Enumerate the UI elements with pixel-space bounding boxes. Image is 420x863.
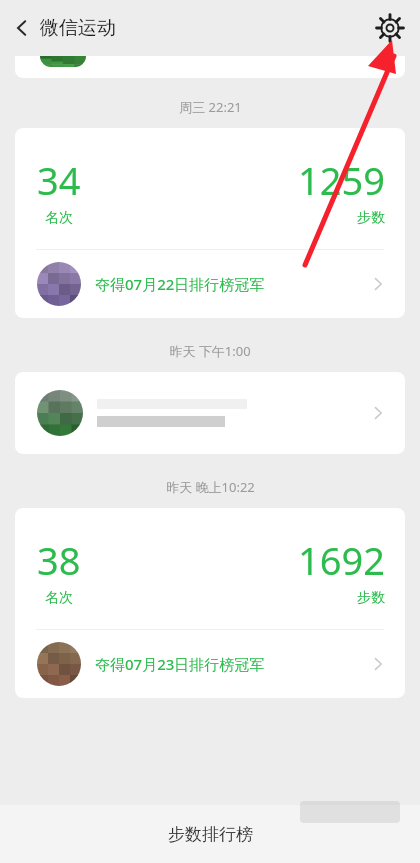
button[interactable]: 步数排行榜 [0, 805, 420, 863]
button[interactable] [15, 56, 405, 78]
staticText: 夺得07月23日排行榜冠军 [95, 654, 265, 674]
staticText: 步数排行榜 [168, 824, 253, 845]
staticText: 步数 [357, 209, 385, 227]
staticText: 夺得07月22日排行榜冠军 [95, 274, 265, 294]
staticText: 1259 [298, 154, 385, 206]
staticText: 1692 [298, 534, 385, 586]
staticText: 昨天 下午1:00 [169, 342, 251, 360]
button[interactable] [15, 372, 405, 454]
staticText: 微信运动 [40, 16, 116, 40]
staticText: 名次 [45, 589, 73, 607]
button[interactable]: 38 [15, 508, 405, 698]
staticText: 周三 22:21 [179, 98, 242, 116]
button[interactable]: 34 [15, 128, 405, 318]
staticText: 34 [37, 154, 81, 206]
staticText: 步数 [357, 589, 385, 607]
staticText: 名次 [45, 209, 73, 227]
button[interactable]: Back [0, 6, 44, 50]
button[interactable]: Settings [368, 6, 412, 50]
staticText: 昨天 晚上10:22 [166, 478, 255, 496]
staticText: 38 [37, 534, 81, 586]
